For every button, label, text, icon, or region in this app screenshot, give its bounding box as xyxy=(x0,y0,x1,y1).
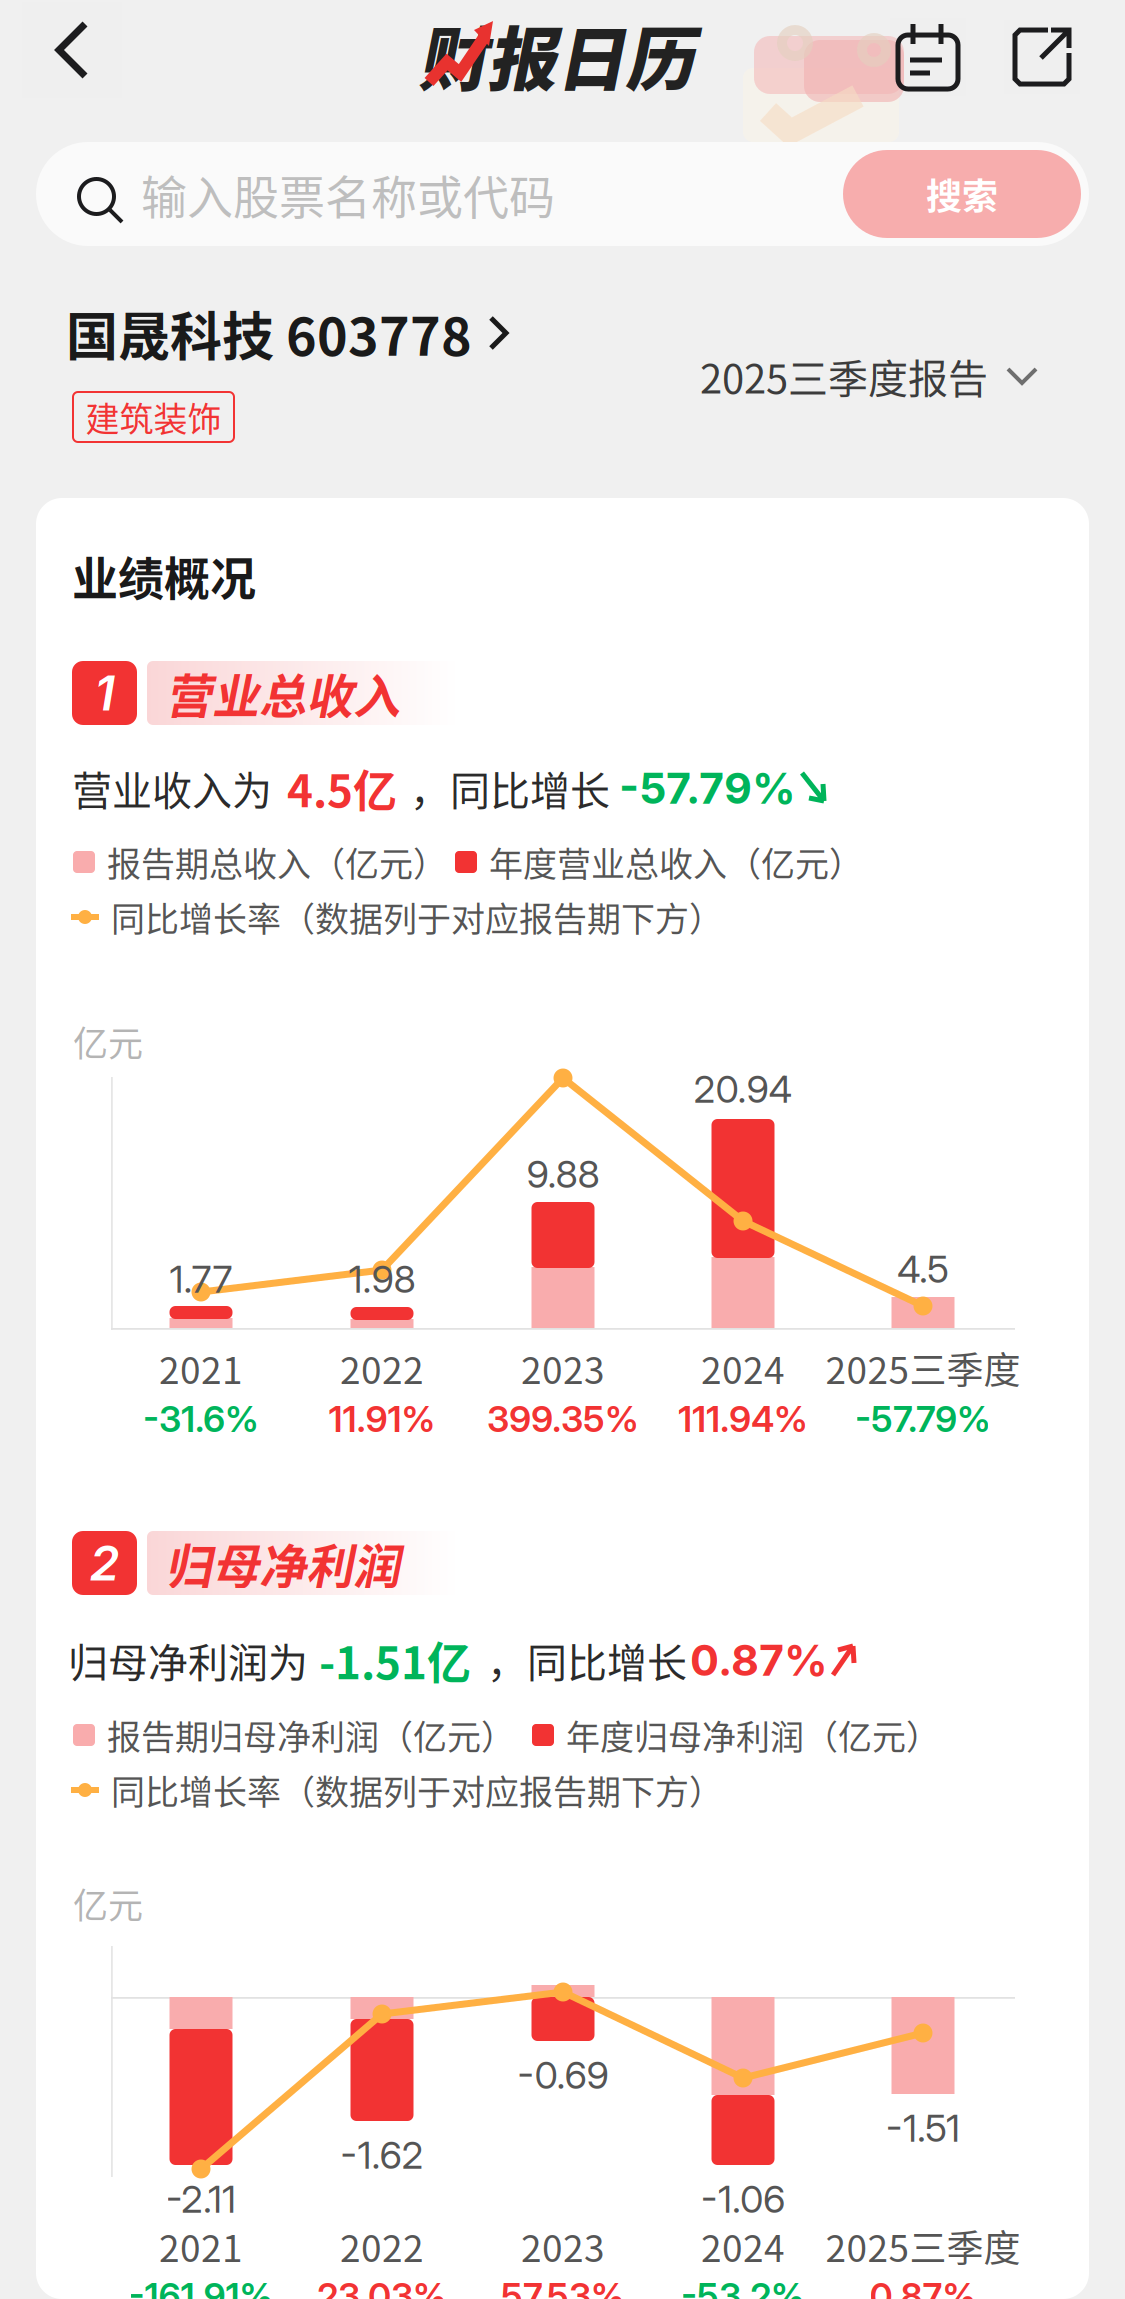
staticText: 2022 xyxy=(340,1341,424,1395)
staticText: 输入股票名称或代码 xyxy=(141,161,555,227)
staticText: 归母净利润为 xyxy=(68,1631,308,1689)
staticText: -53.2% xyxy=(681,2274,805,2299)
staticText: -1.51亿 xyxy=(319,1628,471,1692)
staticText: 1.98 xyxy=(348,1256,415,1302)
staticText: 2022 xyxy=(340,2219,424,2273)
staticText: 营业总收入 xyxy=(165,659,400,727)
staticText: 2023 xyxy=(521,1341,605,1395)
staticText: 报告期归母净利润（亿元） xyxy=(107,1710,515,1760)
button[interactable]: 搜索 xyxy=(843,150,1081,238)
staticText: 归母净利润 xyxy=(165,1529,400,1597)
staticText: 2 xyxy=(89,1534,119,1592)
staticText: ，同比增长 xyxy=(487,1631,687,1689)
staticText: ，同比增长 xyxy=(410,759,610,817)
staticText: 2024 xyxy=(701,1341,785,1395)
staticText: -1.62 xyxy=(340,2132,423,2178)
staticText: -57.79% xyxy=(619,762,796,814)
staticText: 建筑装饰 xyxy=(85,392,221,442)
staticText: 搜索 xyxy=(926,168,998,220)
staticText: 2025三季度 xyxy=(825,2219,1020,2273)
staticText: 财报日历 xyxy=(418,5,694,105)
staticText: 报告期总收入（亿元） xyxy=(107,837,447,887)
staticText: 亿元 xyxy=(73,1016,143,1067)
staticText: 9.88 xyxy=(526,1151,599,1197)
button[interactable]: Share xyxy=(1004,20,1080,94)
staticText: 营业收入为 xyxy=(72,759,272,817)
button[interactable]: Back xyxy=(22,2,122,98)
staticText: 399.35% xyxy=(487,1397,639,1441)
staticText: 1.77 xyxy=(169,1256,232,1302)
staticText: 11.91% xyxy=(328,1397,435,1441)
staticText: -57.79% xyxy=(855,1397,991,1441)
staticText: 同比增长率（数据列于对应报告期下方） xyxy=(111,892,723,942)
staticText: 4.5 xyxy=(897,1246,949,1292)
staticText: 亿元 xyxy=(73,1878,143,1929)
button[interactable]: My reports xyxy=(890,18,966,96)
staticText: 2025三季度报告 xyxy=(700,347,988,405)
staticText: 年度归母净利润（亿元） xyxy=(566,1710,940,1760)
staticText: 2024 xyxy=(701,2219,785,2273)
staticText: 年度营业总收入（亿元） xyxy=(489,837,863,887)
staticText: -1.06 xyxy=(701,2176,785,2222)
staticText: -161.91% xyxy=(128,2274,273,2299)
staticText: 57.53% xyxy=(501,2274,625,2299)
staticText: 2021 xyxy=(159,1341,243,1395)
staticText: 0.87% xyxy=(869,2274,976,2299)
staticText: 111.94% xyxy=(678,1397,808,1441)
button[interactable]: 2025三季度报告 xyxy=(700,347,1100,405)
staticText: 2025三季度 xyxy=(825,1341,1020,1395)
staticText: 1 xyxy=(94,664,114,722)
staticText: 国晟科技 603778 xyxy=(66,295,472,371)
staticText: 业绩概况 xyxy=(72,542,256,609)
staticText: 23.03% xyxy=(317,2274,447,2299)
staticText: 同比增长率（数据列于对应报告期下方） xyxy=(111,1765,723,1815)
staticText: 2023 xyxy=(521,2219,605,2273)
staticText: -31.6% xyxy=(143,1397,259,1441)
button[interactable]: 国晟科技 603778 xyxy=(66,302,686,364)
staticText: 4.5亿 xyxy=(287,756,397,820)
staticText: 20.94 xyxy=(693,1066,792,1112)
staticText: -1.51 xyxy=(886,2105,960,2151)
staticText: 2021 xyxy=(159,2219,243,2273)
staticText: -0.69 xyxy=(517,2052,608,2098)
staticText: 0.87% xyxy=(690,1634,828,1686)
staticText: -2.11 xyxy=(166,2176,236,2222)
